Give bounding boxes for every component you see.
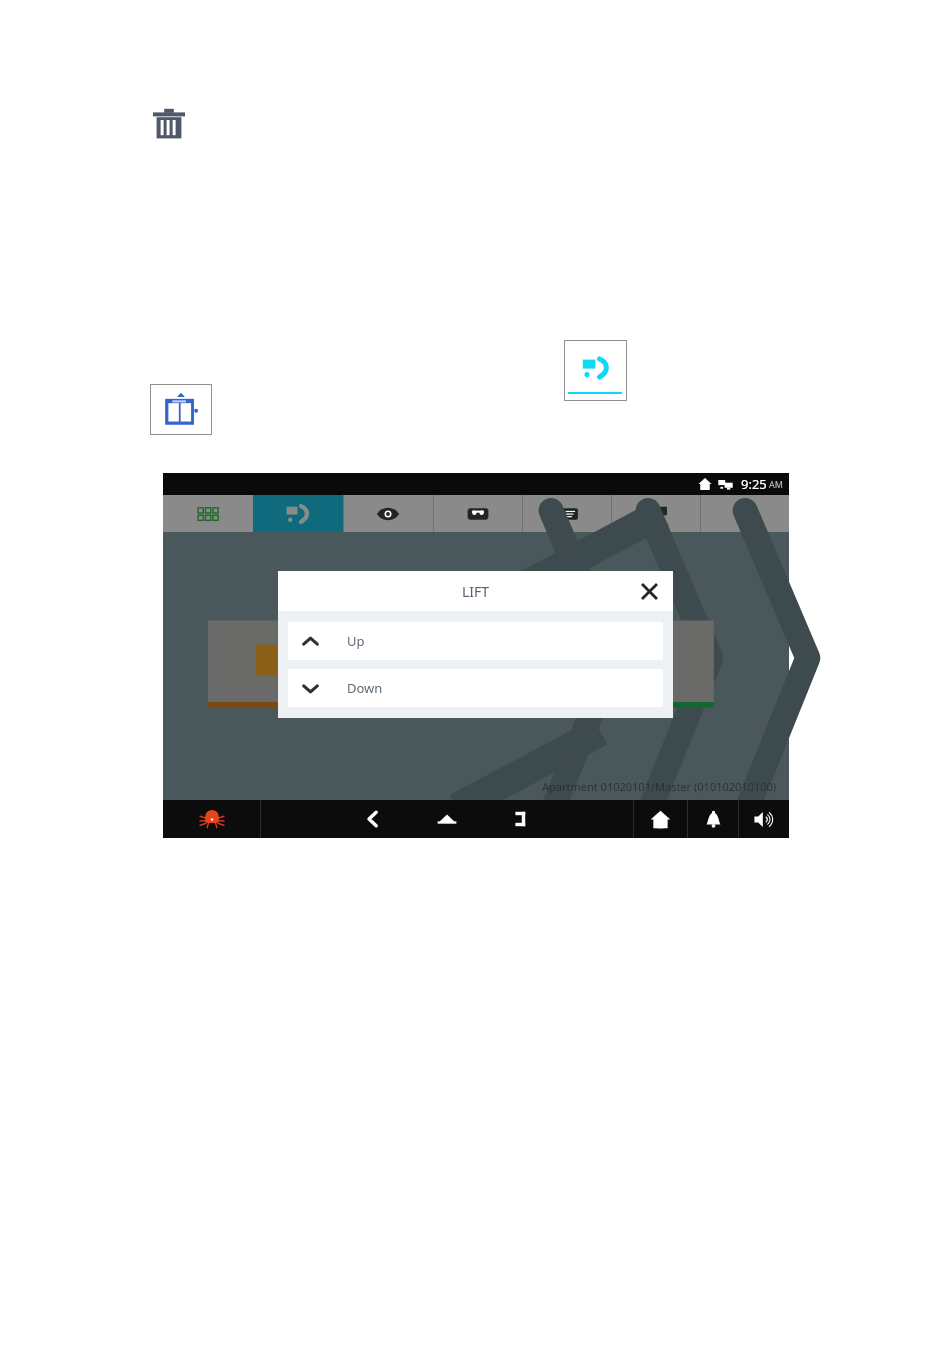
button[interactable]: Back [351, 800, 395, 838]
button[interactable]: Camera [433, 495, 522, 532]
staticText: Down [347, 679, 383, 697]
button[interactable]: Up [288, 622, 663, 660]
staticText: 9:25 [741, 475, 767, 493]
staticText: AM [769, 478, 783, 490]
button[interactable]: Volume [739, 800, 789, 838]
button[interactable]: Down [288, 669, 663, 707]
button[interactable]: Monitor [343, 495, 433, 532]
button[interactable]: Apps [163, 495, 253, 532]
button[interactable]: Lift icon [150, 384, 212, 435]
button[interactable]: Notifications [688, 800, 738, 838]
button[interactable]: Messages [611, 495, 700, 532]
staticText: Apartment 01020101/Master (010102010100) [542, 779, 777, 794]
button[interactable]: Close [637, 579, 661, 603]
staticText: Up [347, 632, 365, 650]
button[interactable]: Home [425, 800, 469, 838]
staticText: LIFT [462, 582, 490, 601]
button[interactable]: Delete [149, 104, 189, 144]
button[interactable]: Contacts [522, 495, 611, 532]
button[interactable]: Home [634, 800, 687, 838]
button[interactable]: Settings [700, 495, 789, 532]
button[interactable]: Intercom [253, 495, 343, 532]
button[interactable]: Octopus [163, 800, 260, 838]
button[interactable]: Recents [499, 800, 543, 838]
button[interactable]: Intercom icon [564, 340, 627, 401]
